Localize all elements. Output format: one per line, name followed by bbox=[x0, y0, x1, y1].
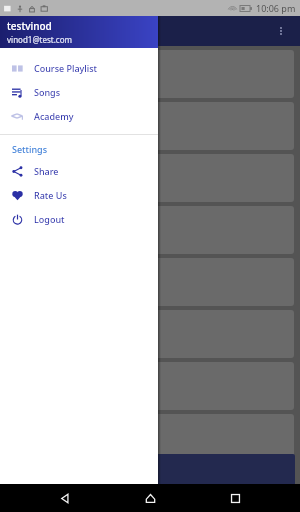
button[interactable] bbox=[6, 310, 294, 358]
button[interactable]: Share bbox=[0, 159, 158, 183]
staticText: Songs bbox=[34, 86, 61, 98]
button[interactable]: Course Playlist bbox=[0, 56, 158, 80]
button[interactable]: More options bbox=[268, 18, 294, 44]
button[interactable]: Rate Us bbox=[0, 183, 158, 207]
button[interactable]: Home bbox=[130, 484, 170, 512]
button[interactable] bbox=[6, 362, 294, 410]
button[interactable] bbox=[6, 102, 294, 150]
staticText: Academy bbox=[34, 110, 74, 122]
staticText: testvinod bbox=[7, 19, 52, 33]
staticText: Share bbox=[34, 165, 59, 177]
staticText: Rate Us bbox=[34, 189, 67, 201]
button[interactable]: Back bbox=[45, 484, 85, 512]
staticText: Settings bbox=[12, 143, 48, 155]
button[interactable] bbox=[6, 414, 294, 462]
staticText: Logout bbox=[34, 213, 65, 225]
staticText: 10:06 pm bbox=[256, 2, 296, 14]
button[interactable] bbox=[6, 206, 294, 254]
button[interactable]: testvinod bbox=[0, 16, 158, 48]
button[interactable] bbox=[6, 258, 294, 306]
button[interactable]: Logout bbox=[0, 207, 158, 231]
button[interactable]: Songs bbox=[0, 80, 158, 104]
button[interactable]: Academy bbox=[0, 104, 158, 128]
staticText: vinod1@test.com bbox=[7, 34, 73, 45]
button[interactable] bbox=[6, 154, 294, 202]
button[interactable] bbox=[6, 50, 294, 98]
button[interactable]: Enroll as a student in Shankar bbox=[5, 454, 295, 486]
button[interactable]: Recent apps bbox=[215, 484, 255, 512]
staticText: Course Playlist bbox=[34, 62, 98, 74]
